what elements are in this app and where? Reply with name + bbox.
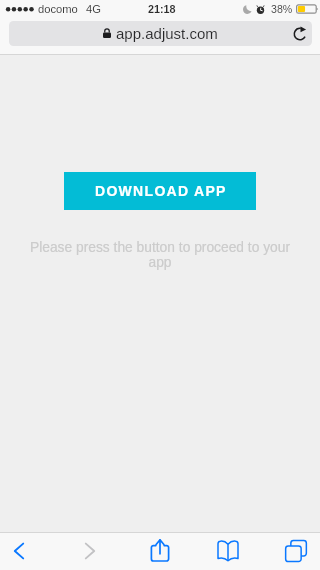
button[interactable]: DOWNLOAD APP	[64, 172, 256, 210]
staticText: Please press the button to proceed to yo…	[29, 240, 291, 270]
staticText: app.adjust.com	[116, 25, 218, 42]
staticText: DOWNLOAD APP	[95, 183, 227, 199]
button[interactable]: app.adjust.com	[9, 21, 312, 46]
staticText: 21:18	[148, 3, 176, 15]
button[interactable]: Back	[0, 533, 41, 570]
staticText: 4G	[86, 3, 101, 16]
staticText: 38%	[271, 3, 293, 15]
button[interactable]: Tabs	[274, 533, 318, 570]
button[interactable]: Forward	[68, 533, 112, 570]
button[interactable]: Bookmarks	[206, 533, 250, 570]
staticText: docomo	[38, 3, 78, 16]
button[interactable]: Reload	[290, 24, 310, 44]
button[interactable]: Share	[138, 533, 182, 570]
